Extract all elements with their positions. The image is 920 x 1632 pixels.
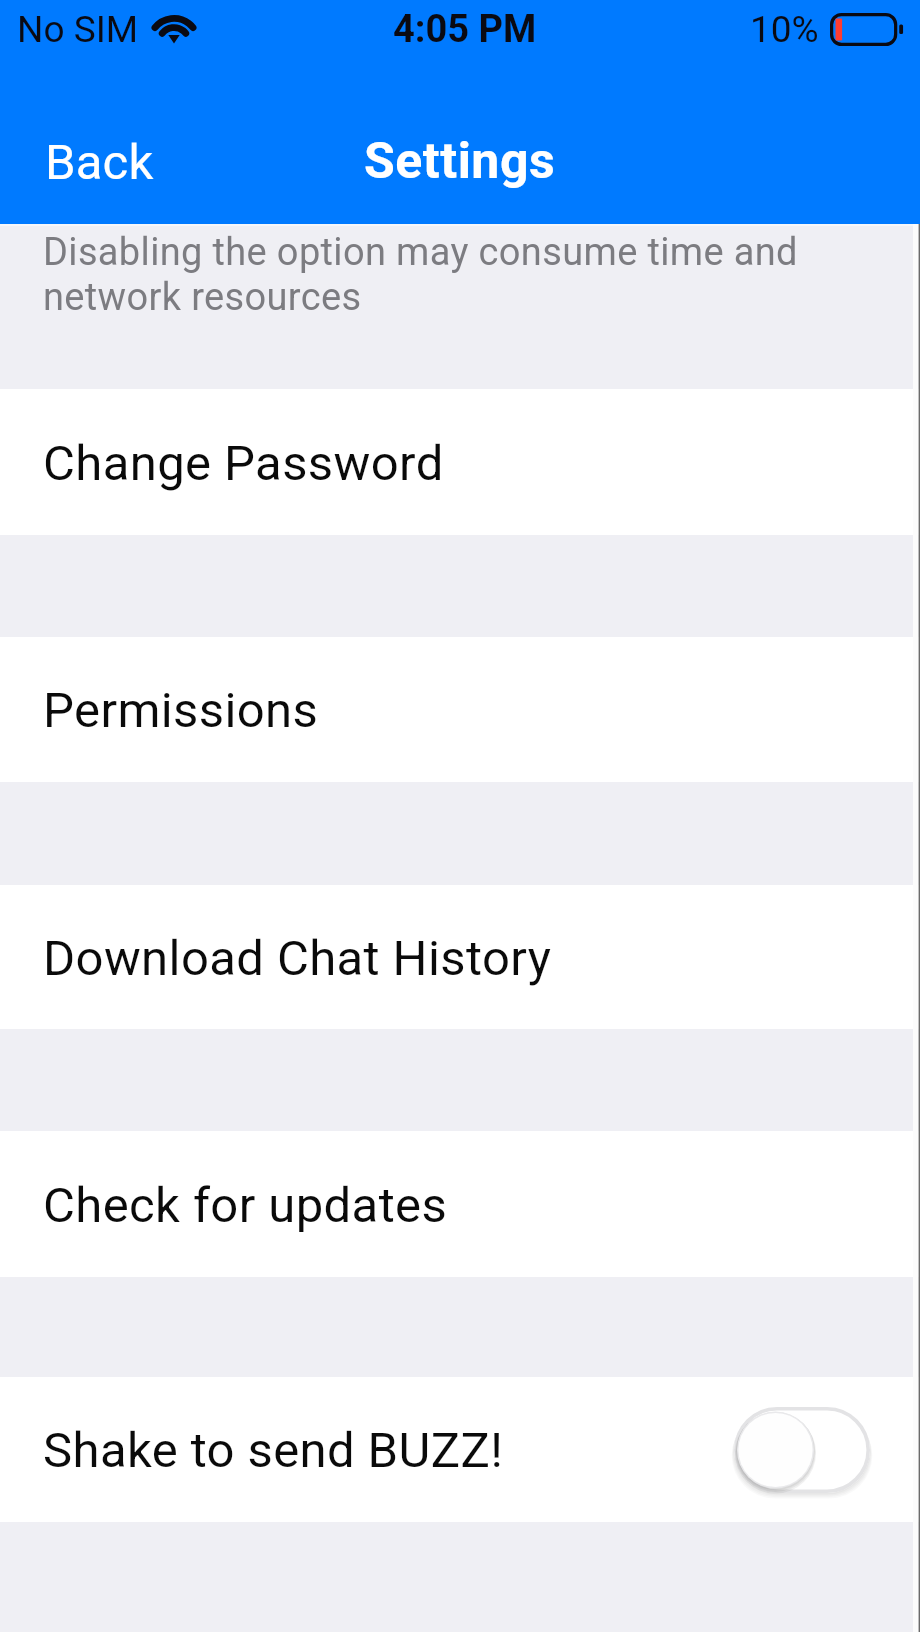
staticText: No SIM bbox=[17, 8, 139, 51]
staticText: Download Chat History bbox=[43, 930, 552, 987]
staticText: Permissions bbox=[43, 682, 319, 739]
button[interactable]: Download Chat History bbox=[0, 885, 920, 1029]
button[interactable]: Check for updates bbox=[0, 1131, 920, 1277]
staticText: 4:05 PM bbox=[393, 7, 537, 52]
button[interactable]: Permissions bbox=[0, 637, 920, 782]
button[interactable]: Change Password bbox=[0, 389, 920, 535]
staticText: Change Password bbox=[43, 435, 444, 492]
button[interactable]: Shake to send BUZZ! bbox=[0, 1377, 920, 1522]
button[interactable]: Back bbox=[0, 114, 194, 224]
staticText: 10% bbox=[750, 8, 819, 51]
staticText: Shake to send BUZZ! bbox=[43, 1422, 504, 1479]
button[interactable]: Shake to send BUZZ toggle bbox=[734, 1407, 870, 1493]
staticText: Back bbox=[45, 134, 154, 191]
staticText: Settings bbox=[364, 132, 556, 191]
staticText: Disabling the option may consume time an… bbox=[43, 230, 820, 320]
staticText: Check for updates bbox=[43, 1177, 448, 1234]
